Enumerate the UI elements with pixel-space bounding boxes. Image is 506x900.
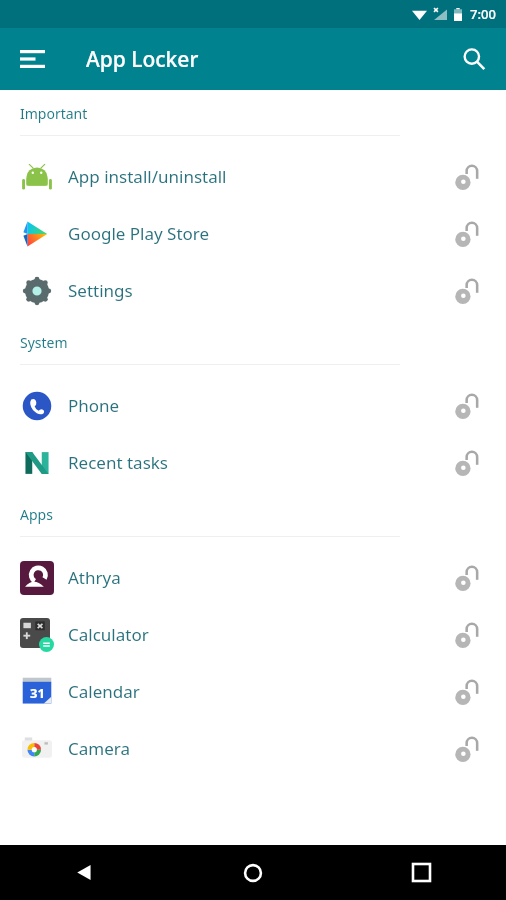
button[interactable]: Google Play Store bbox=[0, 205, 506, 262]
staticText: Athrya bbox=[68, 566, 448, 589]
staticText: Google Play Store bbox=[68, 222, 448, 245]
button[interactable]: Unlocked, tap to lock Phone bbox=[448, 386, 488, 426]
button[interactable]: Unlocked, tap to lock Recent tasks bbox=[448, 443, 488, 483]
button[interactable]: Open navigation menu bbox=[8, 35, 56, 83]
button[interactable]: Search bbox=[450, 35, 498, 83]
staticText: App install/uninstall bbox=[68, 165, 448, 188]
button[interactable]: Camera bbox=[0, 720, 506, 777]
staticText: Camera bbox=[68, 737, 448, 760]
button[interactable]: Unlocked, tap to lock Settings bbox=[448, 271, 488, 311]
button[interactable]: Settings bbox=[0, 262, 506, 319]
button[interactable]: Unlocked, tap to lock Calendar bbox=[448, 672, 488, 712]
button[interactable]: Unlocked, tap to lock App install/uninst… bbox=[448, 157, 488, 197]
button[interactable]: Recent apps bbox=[337, 845, 506, 900]
staticText: Apps bbox=[20, 505, 53, 524]
button[interactable]: Home bbox=[168, 845, 337, 900]
staticText: Settings bbox=[68, 279, 448, 302]
staticText: 7:00 bbox=[470, 5, 496, 23]
button[interactable]: 31 bbox=[0, 663, 506, 720]
staticText: Calendar bbox=[68, 680, 448, 703]
staticText: Phone bbox=[68, 394, 448, 417]
staticText: App Locker bbox=[86, 45, 199, 74]
button[interactable]: App install/uninstall bbox=[0, 148, 506, 205]
button[interactable]: Calculator bbox=[0, 606, 506, 663]
staticText: Calculator bbox=[68, 623, 448, 646]
button[interactable]: Back bbox=[0, 845, 168, 900]
staticText: System bbox=[20, 333, 68, 352]
button[interactable]: Athrya bbox=[0, 549, 506, 606]
button[interactable]: Unlocked, tap to lock Calculator bbox=[448, 615, 488, 655]
staticText: 31 bbox=[30, 684, 45, 702]
button[interactable]: Unlocked, tap to lock Google Play Store bbox=[448, 214, 488, 254]
staticText: Recent tasks bbox=[68, 451, 448, 474]
button[interactable]: Unlocked, tap to lock Athrya bbox=[448, 558, 488, 598]
button[interactable]: Phone bbox=[0, 377, 506, 434]
button[interactable]: Recent tasks bbox=[0, 434, 506, 491]
staticText: Important bbox=[20, 104, 88, 123]
button[interactable]: Unlocked, tap to lock Camera bbox=[448, 729, 488, 769]
